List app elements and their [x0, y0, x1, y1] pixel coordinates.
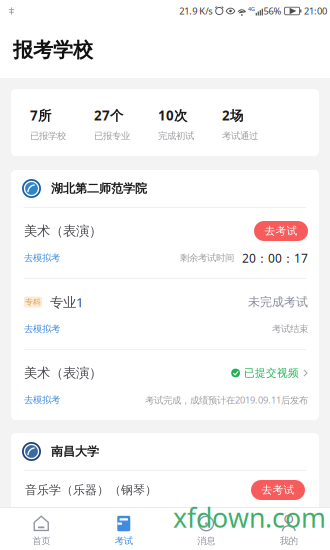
- staticText: 报考学校: [13, 38, 93, 62]
- staticText: 消息: [197, 535, 215, 547]
- staticText: 10次: [158, 106, 187, 124]
- staticText: 7所: [30, 106, 51, 124]
- staticText: 美术（表演）: [24, 365, 102, 381]
- button[interactable]: 去考试: [251, 480, 305, 500]
- button[interactable]: 首页: [0, 508, 82, 550]
- staticText: 考试完成，成绩预计在2019.09.11后发布: [145, 394, 308, 406]
- staticText: 未完成考试: [248, 295, 308, 309]
- button[interactable]: 消息: [165, 508, 247, 550]
- staticText: 考试通过: [222, 130, 258, 142]
- staticText: 专科: [25, 297, 41, 307]
- staticText: 27个: [94, 106, 123, 124]
- staticText: 完成初试: [158, 130, 194, 142]
- staticText: 20：00：17: [242, 250, 308, 266]
- staticText: 南昌大学: [51, 444, 99, 459]
- staticText: 56%: [263, 5, 281, 17]
- staticText: 考试: [115, 535, 133, 547]
- button[interactable]: 去模拟考: [24, 394, 60, 406]
- staticText: 剩余考试时间: [180, 252, 234, 264]
- staticText: 已提交视频: [244, 366, 299, 379]
- staticText: 考试结束: [272, 323, 308, 335]
- staticText: 去模拟考: [24, 394, 60, 406]
- staticText: 21.9 K/s: [179, 5, 212, 17]
- staticText: 首页: [32, 535, 50, 547]
- button[interactable]: 去模拟考: [24, 323, 60, 335]
- button[interactable]: 南昌大学: [11, 433, 319, 470]
- staticText: 2场: [222, 106, 243, 124]
- staticText: 已报学校: [30, 130, 66, 142]
- button[interactable]: 我的: [247, 508, 330, 550]
- staticText: 4G: [248, 5, 255, 13]
- staticText: 湖北第二师范学院: [51, 181, 147, 196]
- staticText: 21:00: [304, 5, 327, 17]
- staticText: 专业1: [50, 293, 84, 311]
- staticText: 音乐学（乐器）（钢琴）: [25, 483, 157, 497]
- button[interactable]: 考试: [82, 508, 165, 550]
- staticText: 我的: [280, 535, 298, 547]
- button[interactable]: 去模拟考: [24, 252, 60, 264]
- staticText: 已报专业: [94, 130, 130, 142]
- staticText: 美术（表演）: [24, 223, 102, 239]
- button[interactable]: 去考试: [254, 221, 308, 241]
- staticText: xfdown.com: [173, 500, 326, 535]
- staticText: 去考试: [261, 483, 294, 496]
- staticText: 去考试: [264, 224, 297, 237]
- button[interactable]: 已提交视频: [231, 366, 308, 379]
- button[interactable]: 湖北第二师范学院: [11, 170, 319, 207]
- staticText: 去模拟考: [24, 252, 60, 264]
- staticText: 去模拟考: [24, 323, 60, 335]
